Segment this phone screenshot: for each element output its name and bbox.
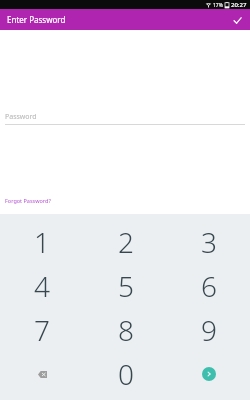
button[interactable]: 6 [167, 264, 250, 308]
button[interactable]: Confirm password [229, 12, 245, 28]
button[interactable]: 7 [0, 308, 84, 352]
button[interactable]: Password [5, 112, 245, 125]
staticText: Forgot Password? [5, 197, 51, 204]
staticText: 8 [118, 311, 134, 349]
staticText: 1 [34, 223, 50, 261]
staticText: 17% [213, 2, 223, 9]
button[interactable]: Backspace [0, 352, 84, 396]
staticText: 2 [118, 223, 134, 261]
staticText: 3 [201, 223, 217, 261]
button[interactable]: 1 [0, 220, 84, 264]
button[interactable]: 9 [167, 308, 250, 352]
staticText: Enter Password [7, 14, 66, 25]
staticText: 6 [201, 267, 217, 305]
button[interactable]: 4 [0, 264, 84, 308]
button[interactable]: 3 [167, 220, 250, 264]
button[interactable]: 8 [84, 308, 167, 352]
staticText: 5 [118, 267, 134, 305]
staticText: Password [5, 112, 37, 122]
button[interactable]: 2 [84, 220, 167, 264]
button[interactable]: 5 [84, 264, 167, 308]
button[interactable]: Submit [167, 352, 250, 396]
staticText: 4 [34, 267, 50, 305]
staticText: 0 [118, 355, 134, 393]
staticText: 7 [34, 311, 50, 349]
button[interactable]: Forgot Password? [5, 197, 51, 204]
button[interactable]: 0 [84, 352, 167, 396]
staticText: 9 [201, 311, 217, 349]
staticText: 20:27 [231, 1, 247, 9]
